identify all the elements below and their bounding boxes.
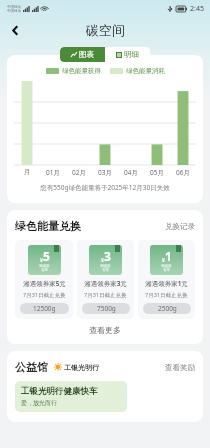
- staticText: 绿色能量兑换: [15, 219, 81, 233]
- staticText: 明细: [124, 50, 139, 59]
- staticText: 满减券: [39, 264, 50, 268]
- button[interactable]: ¥: [77, 240, 134, 319]
- button[interactable]: 查看奖励: [165, 363, 195, 372]
- staticText: 2:45: [190, 4, 204, 14]
- button[interactable]: ¥: [15, 240, 73, 319]
- staticText: ¥: [101, 257, 104, 264]
- staticText: 7月31日截止兑换: [84, 291, 127, 299]
- staticText: 绿色能量消耗: [126, 67, 165, 75]
- staticText: 公益馆: [15, 360, 48, 374]
- staticText: 中国移动: [7, 9, 21, 13]
- button[interactable]: 图表: [60, 47, 105, 62]
- staticText: 您有550g绿色能量将于2025年12月30日失效: [7, 183, 203, 192]
- staticText: 06月: [176, 168, 190, 177]
- staticText: 工银光明行: [64, 363, 99, 372]
- staticText: 专享: [41, 268, 48, 272]
- staticText: ¥: [40, 257, 43, 264]
- staticText: 碳空间: [86, 22, 125, 38]
- staticText: 7500g: [97, 304, 116, 313]
- staticText: 2500g: [158, 304, 177, 313]
- staticText: 湘遇领券家5元: [23, 279, 66, 288]
- staticText: 03月: [98, 168, 112, 177]
- staticText: 月: [24, 168, 31, 176]
- button[interactable]: 查看更多: [15, 325, 195, 335]
- staticText: 湘遇领券家1元: [145, 279, 188, 288]
- button[interactable]: 明细: [105, 47, 150, 62]
- staticText: 7月31日截止兑换: [145, 291, 188, 299]
- staticText: 工银光明行健康快车: [21, 386, 98, 397]
- staticText: 5: [43, 248, 50, 264]
- button[interactable]: 工银光明行健康快车: [15, 381, 127, 412]
- button[interactable]: Back: [4, 19, 26, 41]
- staticText: 01月: [46, 168, 60, 177]
- staticText: ¥: [162, 257, 165, 264]
- staticText: 3: [104, 248, 111, 264]
- staticText: 爱，放光而行: [21, 399, 57, 407]
- staticText: 中国移动: [7, 5, 21, 9]
- button[interactable]: 兑换记录: [165, 222, 195, 231]
- staticText: 绿色能量获得: [62, 67, 101, 75]
- staticText: 专享: [102, 268, 109, 272]
- staticText: 7月31日截止兑换: [23, 291, 66, 299]
- staticText: 02月: [72, 168, 86, 177]
- staticText: 查看奖励: [165, 363, 195, 372]
- staticText: 兑换记录: [165, 222, 195, 231]
- staticText: 满减券: [161, 264, 172, 268]
- staticText: 图表: [79, 50, 94, 59]
- staticText: 12500g: [33, 304, 56, 313]
- staticText: 湘遇领券家3元: [84, 279, 127, 288]
- staticText: 1: [165, 248, 172, 264]
- staticText: 05月: [150, 168, 164, 177]
- staticText: 查看更多: [89, 325, 121, 335]
- staticText: 专享: [163, 268, 170, 272]
- staticText: 04月: [124, 168, 138, 177]
- button[interactable]: ¥: [138, 240, 195, 319]
- staticText: 满减券: [100, 264, 111, 268]
